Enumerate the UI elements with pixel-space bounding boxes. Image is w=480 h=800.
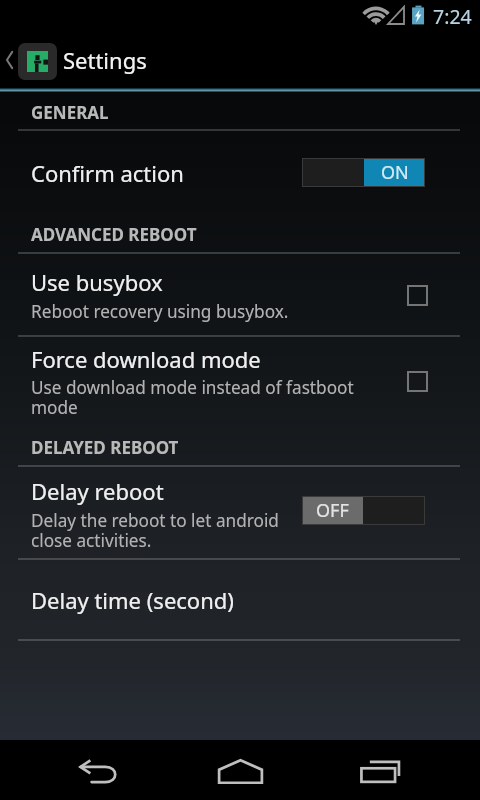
staticText: Use download mode instead of fastboot mo… — [31, 376, 354, 419]
staticText: 7:24 — [433, 3, 472, 30]
button[interactable]: Use busybox — [31, 267, 163, 297]
staticText: ADVANCED REBOOT — [31, 223, 197, 246]
button[interactable]: Switch off — [302, 496, 425, 525]
button[interactable]: Delay time (second) — [31, 585, 234, 615]
button[interactable]: Confirm action — [31, 158, 184, 188]
staticText: DELAYED REBOOT — [31, 436, 179, 459]
button[interactable]: Delay reboot — [31, 476, 164, 506]
staticText: OFF — [316, 498, 349, 523]
button[interactable]: Navigate up — [0, 31, 480, 88]
button[interactable]: Checkbox — [398, 362, 437, 401]
staticText: GENERAL — [31, 101, 109, 124]
button[interactable]: Home — [190, 740, 290, 800]
staticText: Delay the reboot to let android close ac… — [31, 509, 279, 552]
button[interactable]: Back — [50, 740, 150, 800]
staticText: Reboot recovery using busybox. — [31, 300, 289, 323]
staticText: Settings — [63, 45, 147, 75]
staticText: ON — [381, 160, 409, 185]
button[interactable]: Switch on — [302, 158, 425, 187]
button[interactable]: Force download mode — [31, 344, 261, 374]
button[interactable]: Recent apps — [330, 740, 430, 800]
button[interactable]: Checkbox — [398, 276, 437, 315]
